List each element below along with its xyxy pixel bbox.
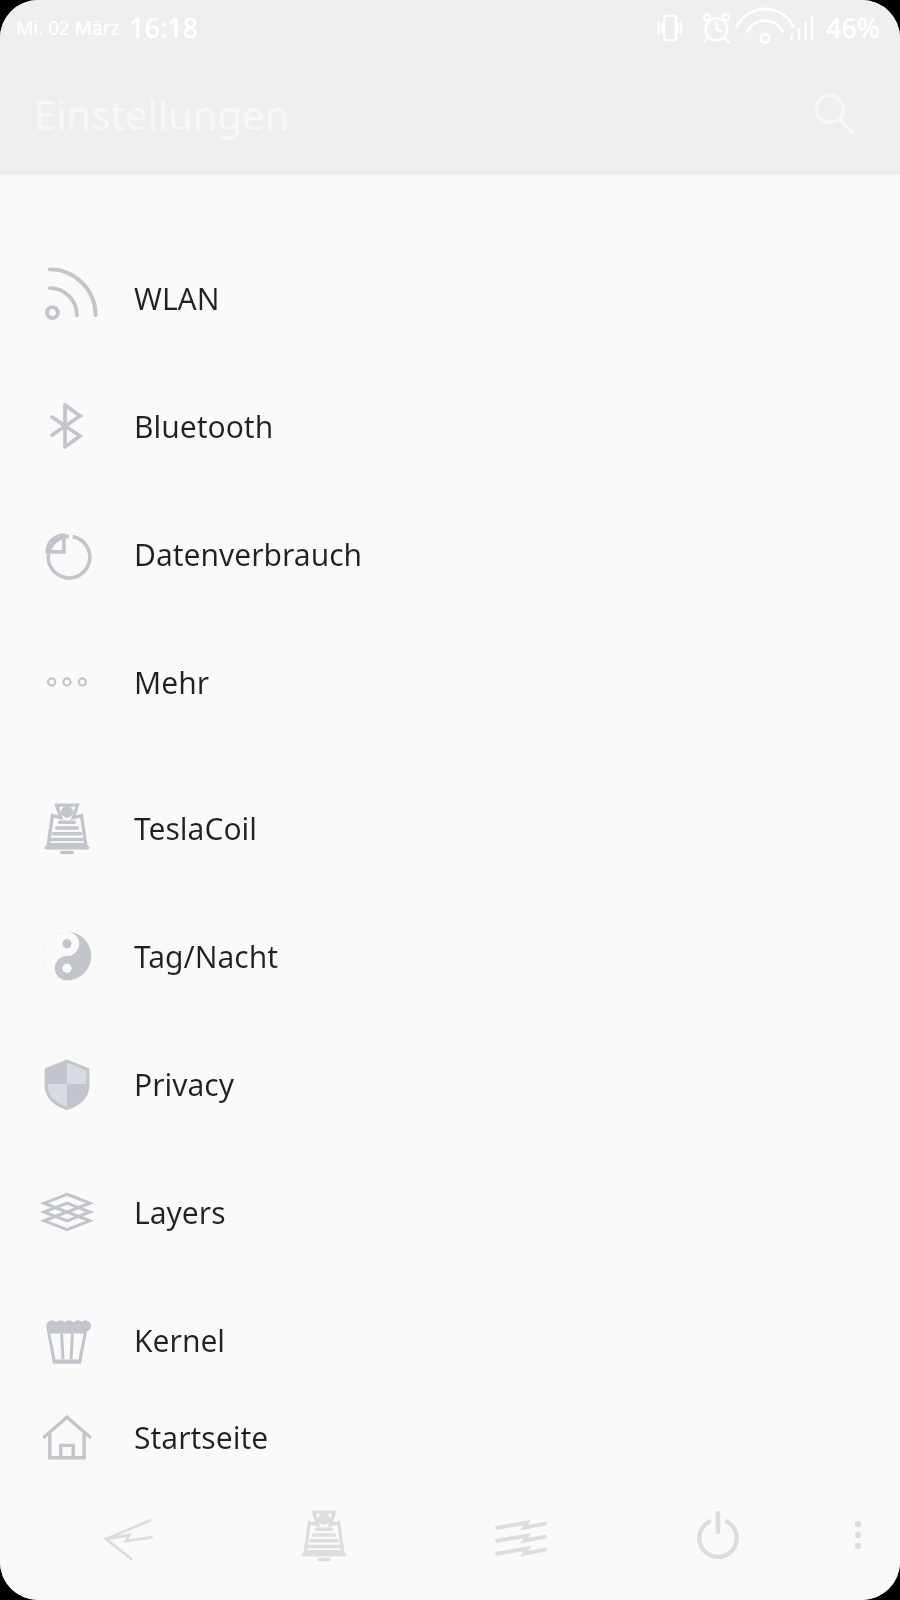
staticText: Startseite	[134, 1417, 269, 1458]
button[interactable]: Datenverbrauch	[0, 490, 900, 618]
button[interactable]: Weitere Optionen	[816, 1470, 900, 1600]
staticText: Layers	[134, 1192, 226, 1233]
staticText: Kernel	[134, 1320, 226, 1361]
button[interactable]: Einstellen	[422, 1470, 619, 1600]
button[interactable]: Kernel	[0, 1276, 900, 1404]
button[interactable]: Privacy	[0, 1020, 900, 1148]
staticText: WLAN	[134, 278, 220, 319]
staticText: Datenverbrauch	[134, 534, 363, 575]
button[interactable]: Bluetooth	[0, 362, 900, 490]
staticText: Mehr	[134, 662, 210, 703]
button[interactable]: TeslaCoil	[0, 764, 900, 892]
staticText: Mi. 02 März	[16, 15, 120, 41]
staticText: 46%	[826, 9, 880, 46]
staticText: TeslaCoil	[134, 808, 258, 849]
button[interactable]: Mehr	[0, 618, 900, 746]
button[interactable]: Zurück	[30, 1470, 226, 1600]
staticText: Tag/Nacht	[134, 936, 279, 977]
button[interactable]: Tag/Nacht	[0, 892, 900, 1020]
button[interactable]: Layers	[0, 1148, 900, 1276]
button[interactable]: TeslaCoil	[226, 1470, 422, 1600]
button[interactable]: WLAN	[0, 234, 900, 362]
button[interactable]: Ein/Aus	[619, 1470, 816, 1600]
button[interactable]: Startseite	[0, 1404, 900, 1470]
staticText: Privacy	[134, 1064, 235, 1105]
staticText: 16:18	[129, 9, 199, 46]
staticText: Bluetooth	[134, 406, 274, 447]
